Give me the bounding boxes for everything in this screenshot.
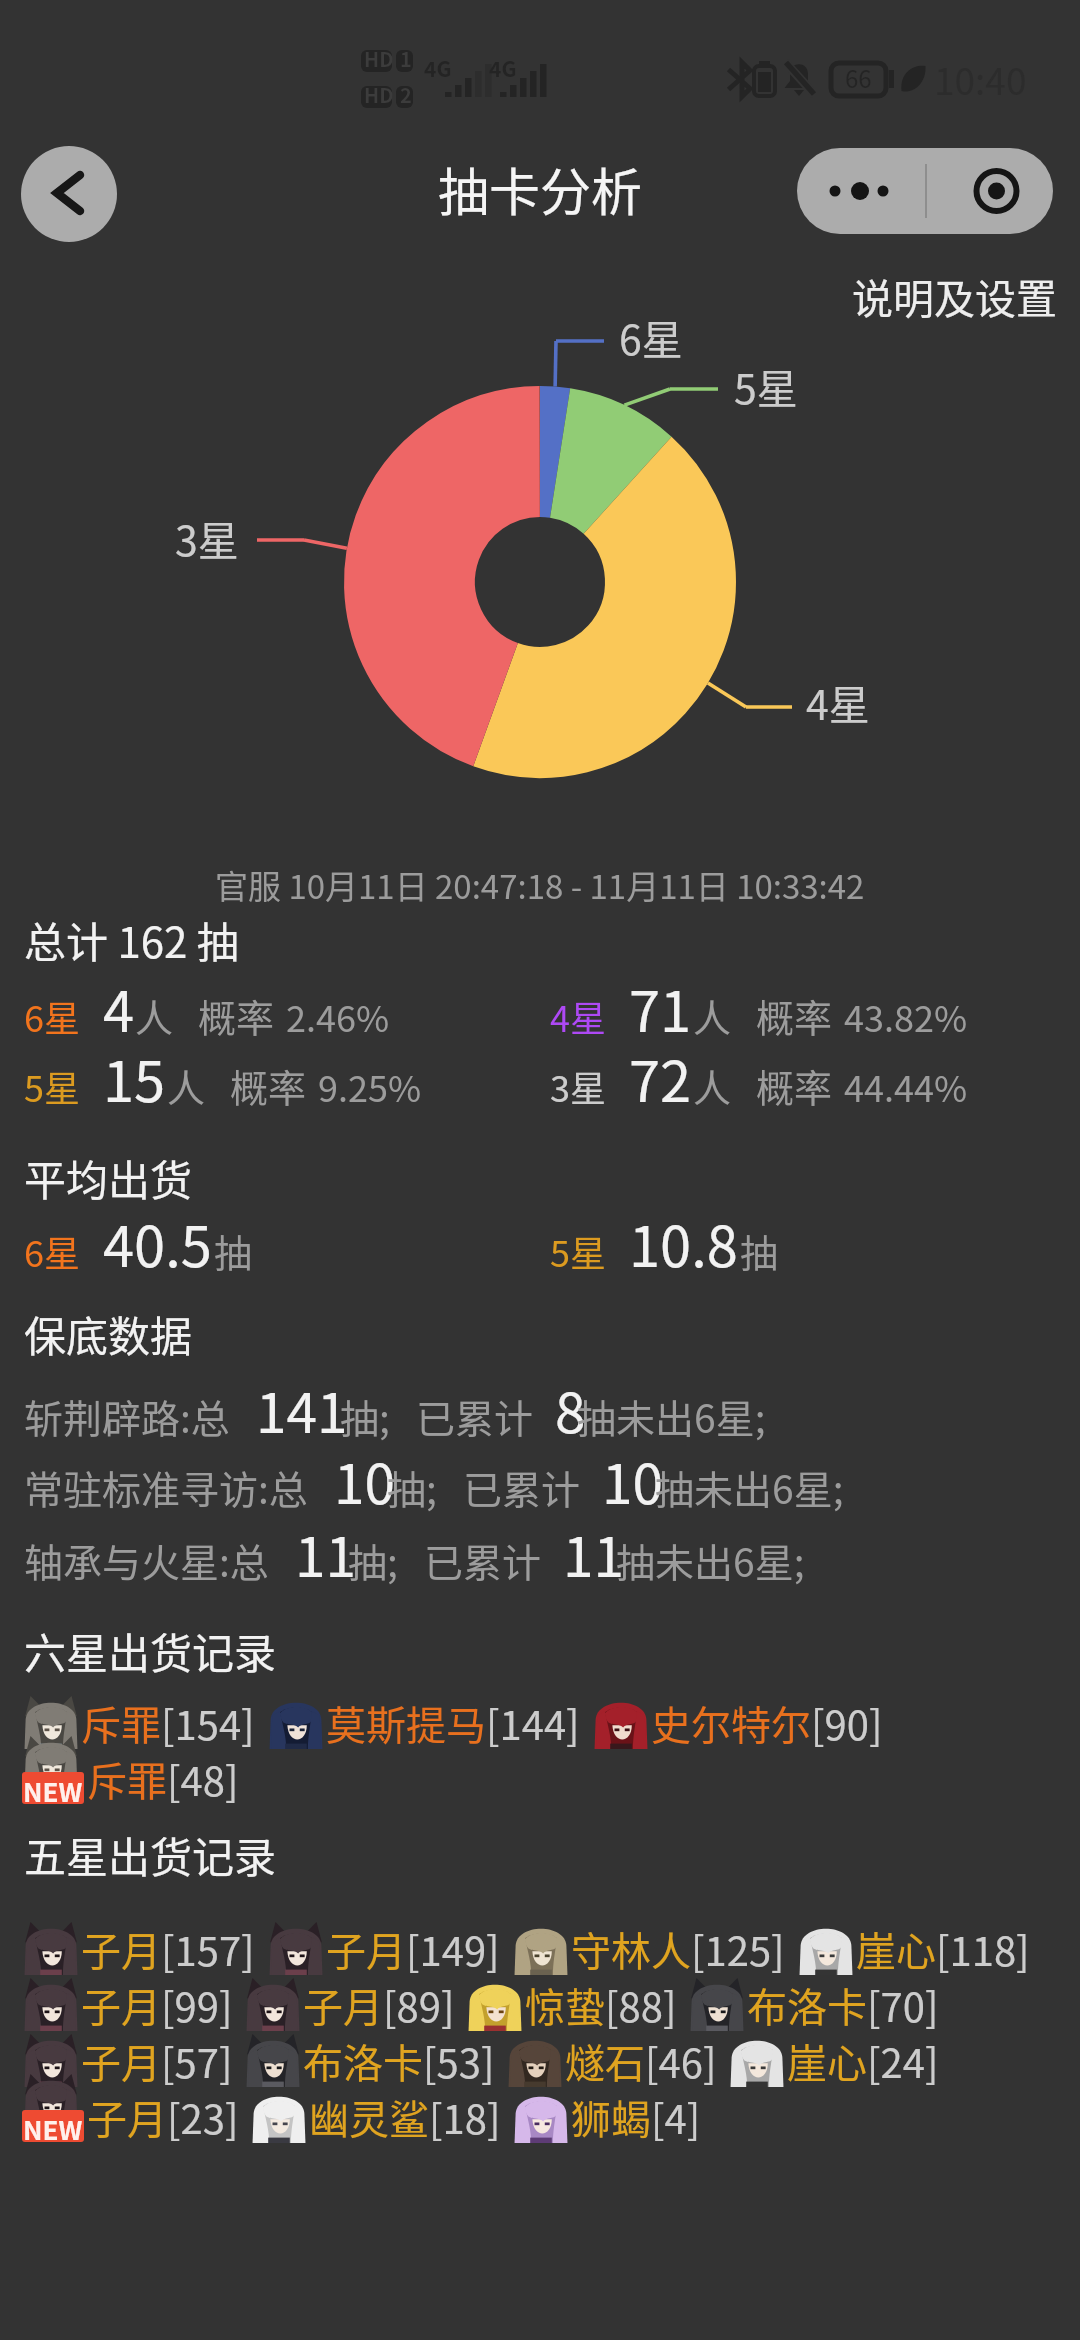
button[interactable]: Back [21,146,117,242]
staticText: 1 [400,44,412,73]
staticText: 崖心 [856,1920,936,1978]
staticText: 史尔特尔 [651,1694,811,1752]
staticText: 2.46% [286,990,390,1042]
staticText: 44.44% [844,1060,968,1112]
staticText: 6星 [24,1225,80,1277]
staticText: [90] [811,1694,883,1752]
staticText: [99] [161,1976,233,2034]
staticText: 人 [167,1058,206,1113]
staticText: 10 [334,1440,396,1520]
staticText: 轴承与火星:总 [24,1532,269,1588]
staticText: 子月 [81,1976,161,2034]
staticText: 4G [424,53,452,83]
staticText: 5星 [24,1060,80,1112]
staticText: HD [364,44,394,73]
staticText: 六星出货记录 [24,1620,277,1681]
staticText: 概率 [756,1058,833,1113]
staticText: 莫斯提马 [326,1694,486,1752]
staticText: 141 [256,1369,348,1449]
staticText: 布洛卡 [303,2032,423,2090]
staticText: 10.8 [629,1202,738,1283]
staticText: NEW [23,2110,83,2142]
staticText: 子月 [326,1920,406,1978]
staticText: 五星出货记录 [24,1824,277,1885]
staticText: 3星 [550,1060,606,1112]
staticText: 抽 [214,1223,253,1278]
staticText: [157] [161,1920,255,1978]
staticText: 4G [489,53,517,83]
staticText: [24] [867,2032,939,2090]
staticText: 保底数据 [24,1303,193,1364]
button[interactable]: More options [797,148,925,234]
staticText: [46] [645,2032,717,2090]
staticText: 3星 [175,508,239,567]
staticText: 抽卡分析 [438,152,643,226]
staticText: 2 [400,80,412,109]
staticText: HD [364,80,394,109]
staticText: 守林人 [571,1920,691,1978]
staticText: [53] [423,2032,495,2090]
staticText: 11 [295,1513,357,1593]
staticText: 已累计 [416,1388,534,1444]
staticText: [144] [486,1694,580,1752]
staticText: 71 [629,967,692,1048]
staticText: 43.82% [844,990,968,1042]
staticText: 6星 [24,990,80,1042]
staticText: 惊蛰 [525,1976,605,2034]
staticText: 10 [602,1440,664,1520]
staticText: 概率 [198,988,275,1043]
staticText: 11 [563,1513,625,1593]
staticText: 9.25% [318,1060,422,1112]
staticText: [88] [605,1976,677,2034]
staticText: [23] [167,2088,239,2146]
staticText: 人 [135,988,174,1043]
staticText: 抽未出6星; [616,1532,805,1588]
staticText: 燧石 [565,2032,645,2090]
staticText: 狮蝎 [571,2088,651,2146]
staticText: 72 [629,1037,692,1118]
staticText: 常驻标准寻访:总 [24,1459,308,1515]
staticText: 抽 [740,1223,779,1278]
staticText: 人 [693,1058,732,1113]
staticText: 平均出货 [24,1147,193,1208]
staticText: 子月 [81,2032,161,2090]
button[interactable]: Close mini program [927,148,1053,234]
staticText: [70] [867,1976,939,2034]
staticText: 斥罪 [81,1694,161,1752]
staticText: 5星 [734,356,798,415]
staticText: 总计 162 抽 [24,909,239,970]
staticText: 幽灵鲨 [309,2088,429,2146]
staticText: 抽未出6星; [577,1388,766,1444]
staticText: 已累计 [463,1459,581,1515]
staticText: 崖心 [787,2032,867,2090]
staticText: [149] [406,1920,500,1978]
staticText: [89] [383,1976,455,2034]
staticText: 8 [555,1369,586,1449]
staticText: 4星 [806,672,870,731]
staticText: 官服 10月11日 20:47:18 - 11月11日 10:33:42 [215,861,865,909]
staticText: [18] [429,2088,501,2146]
staticText: [4] [651,2088,701,2146]
staticText: [57] [161,2032,233,2090]
staticText: 5星 [550,1225,606,1277]
staticText: [154] [161,1694,255,1752]
staticText: 斩荆辟路:总 [24,1388,230,1444]
staticText: 人 [693,988,732,1043]
staticText: 斥罪 [87,1750,167,1808]
staticText: 概率 [756,988,833,1043]
staticText: 概率 [230,1058,307,1113]
staticText: 抽; [348,1532,398,1588]
staticText: 4星 [550,990,606,1042]
staticText: 6星 [619,307,683,366]
staticText: [48] [167,1750,239,1808]
staticText: 说明及设置 [852,266,1057,325]
staticText: 15 [103,1037,166,1118]
staticText: NEW [23,1772,83,1804]
staticText: 4 [103,967,135,1048]
staticText: 布洛卡 [747,1976,867,2034]
staticText: 抽未出6星; [655,1459,844,1515]
staticText: 子月 [87,2088,167,2146]
staticText: 子月 [81,1920,161,1978]
staticText: 已累计 [424,1532,542,1588]
